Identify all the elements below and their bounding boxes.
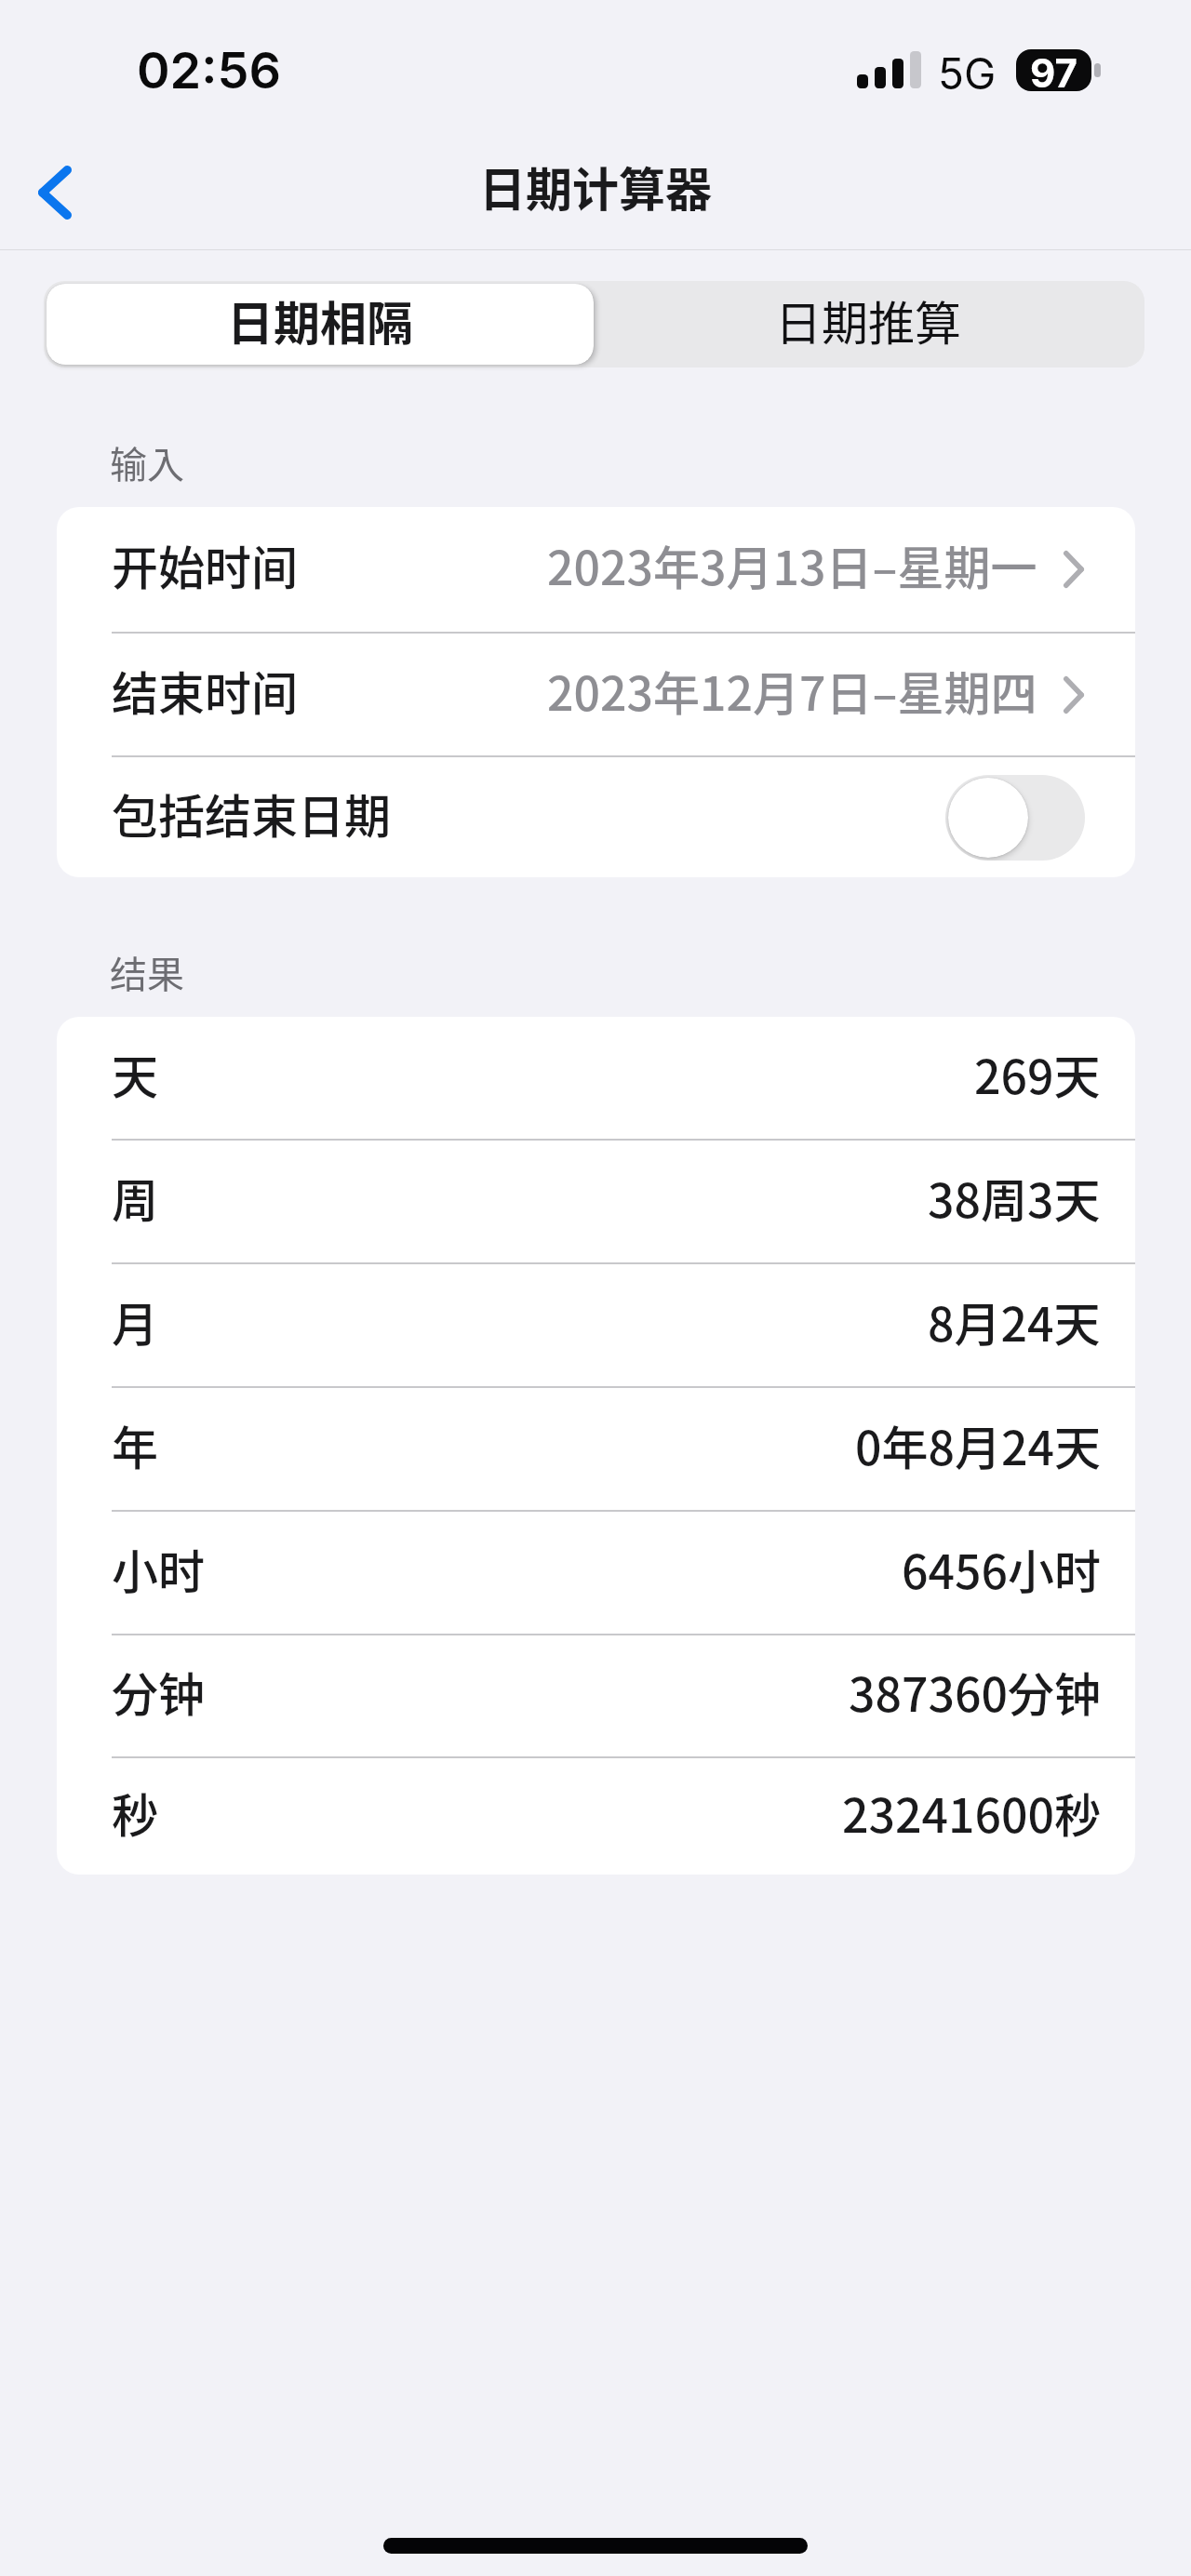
staticText: 269天 bbox=[974, 1040, 1101, 1107]
button[interactable]: 日期推算 bbox=[594, 284, 1142, 365]
button[interactable]: Back bbox=[13, 151, 97, 234]
button[interactable]: 天 bbox=[57, 1017, 1135, 1139]
staticText: 包括结束日期 bbox=[112, 780, 391, 847]
staticText: 23241600秒 bbox=[842, 1779, 1101, 1846]
staticText: 0年8月24天 bbox=[855, 1411, 1101, 1478]
button[interactable]: 分钟 bbox=[57, 1635, 1135, 1756]
staticText: 38周3天 bbox=[928, 1164, 1101, 1231]
button[interactable]: 年 bbox=[57, 1388, 1135, 1510]
staticText: 年 bbox=[112, 1411, 158, 1478]
staticText: 结果 bbox=[110, 945, 184, 999]
button[interactable]: 小时 bbox=[57, 1512, 1135, 1634]
button[interactable]: 日期相隔 bbox=[47, 284, 594, 365]
staticText: 6456小时 bbox=[902, 1535, 1101, 1602]
staticText: 日期计算器 bbox=[479, 153, 712, 220]
staticText: 小时 bbox=[112, 1535, 205, 1602]
staticText: 天 bbox=[112, 1040, 158, 1107]
button[interactable]: 开始时间 bbox=[57, 507, 1135, 632]
staticText: 结束时间 bbox=[112, 657, 298, 724]
staticText: 日期相隔 bbox=[227, 287, 413, 354]
button[interactable]: 包括结束日期 开关 bbox=[945, 775, 1085, 861]
button[interactable]: 包括结束日期 bbox=[57, 757, 1135, 877]
staticText: 秒 bbox=[112, 1779, 158, 1846]
staticText: 2023年12月7日–星期四 bbox=[547, 657, 1037, 724]
staticText: 周 bbox=[112, 1164, 158, 1231]
staticText: 开始时间 bbox=[112, 531, 298, 598]
staticText: 输入 bbox=[110, 435, 184, 489]
staticText: 02:56 bbox=[137, 40, 281, 100]
staticText: 97 bbox=[1030, 49, 1077, 91]
button[interactable]: 月 bbox=[57, 1264, 1135, 1386]
staticText: 分钟 bbox=[112, 1658, 205, 1725]
staticText: 8月24天 bbox=[928, 1288, 1101, 1355]
staticText: 387360分钟 bbox=[849, 1658, 1101, 1725]
button[interactable]: 结束时间 bbox=[57, 634, 1135, 755]
staticText: 5G bbox=[938, 47, 997, 100]
button[interactable]: 周 bbox=[57, 1141, 1135, 1262]
button[interactable]: 秒 bbox=[57, 1758, 1135, 1875]
staticText: 月 bbox=[112, 1288, 158, 1355]
staticText: 2023年3月13日–星期一 bbox=[547, 531, 1037, 598]
staticText: 日期推算 bbox=[775, 287, 961, 354]
